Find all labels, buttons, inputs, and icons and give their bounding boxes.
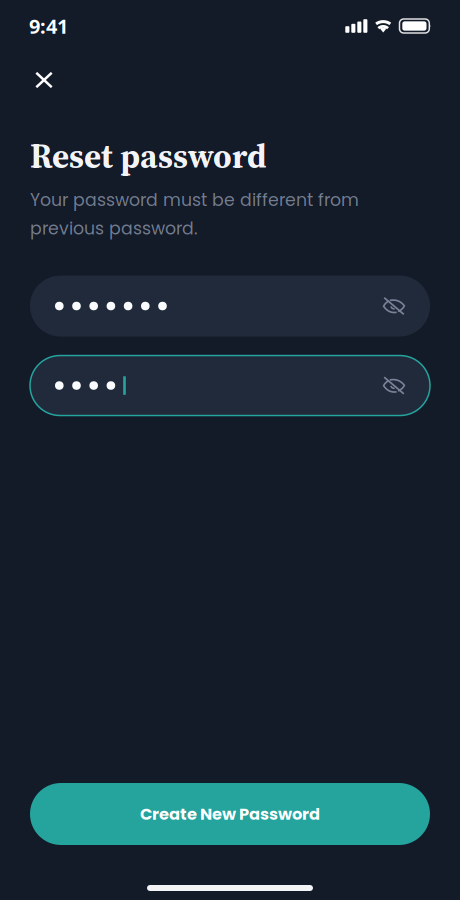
staticText: Create New Password [140,803,320,825]
button[interactable]: Show password [371,362,417,408]
button[interactable]: Close [21,57,67,103]
button[interactable]: Create New Password [30,783,430,845]
staticText: Your password must be different from pre… [30,188,359,240]
button[interactable]: Show password [371,283,417,329]
staticText: Reset password [30,133,267,179]
staticText: 9:41 [29,12,68,40]
